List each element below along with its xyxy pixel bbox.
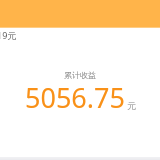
button[interactable] [0,0,160,28]
staticText: 元 [127,100,136,111]
button[interactable]: 累计收益 [0,70,160,117]
staticText: 累计收益 [64,70,96,80]
staticText: 19元 [0,29,17,41]
button[interactable]: 19元 [0,28,160,41]
staticText: 5056.75 [25,79,125,116]
